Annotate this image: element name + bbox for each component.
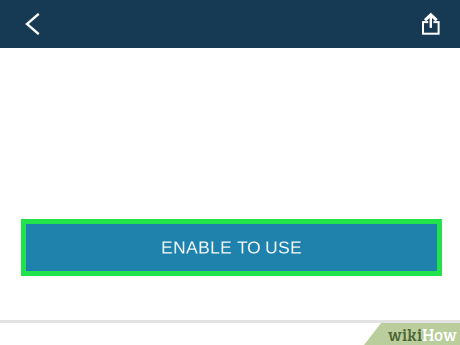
staticText: ENABLE TO USE	[161, 238, 302, 257]
staticText: wiki	[388, 322, 422, 345]
button[interactable]: ENABLE TO USE	[21, 219, 442, 276]
button[interactable]: Back	[10, 0, 56, 48]
staticText: How	[422, 322, 457, 345]
button[interactable]: Share	[408, 0, 454, 48]
